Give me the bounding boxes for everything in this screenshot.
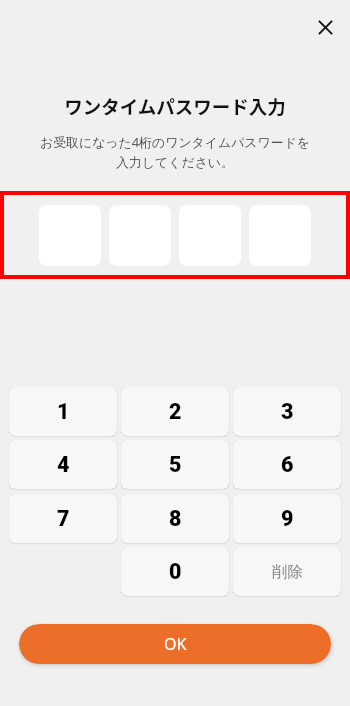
button[interactable]: 4 [9, 440, 117, 489]
button[interactable]: 削除 [233, 547, 341, 596]
button[interactable]: 2 [121, 387, 229, 436]
staticText: お受取になった4桁のワンタイムパスワードを 入力してください。 [18, 133, 332, 171]
staticText: 7 [57, 506, 70, 531]
button[interactable]: 6 [233, 440, 341, 489]
button[interactable]: Close [309, 11, 341, 43]
staticText: 6 [281, 452, 294, 477]
button[interactable]: 7 [9, 494, 117, 543]
button[interactable]: 3 [233, 387, 341, 436]
staticText: 2 [169, 399, 182, 424]
staticText: 8 [169, 506, 182, 531]
button[interactable]: 8 [121, 494, 229, 543]
staticText: 3 [281, 399, 294, 424]
staticText: 5 [169, 452, 182, 477]
staticText: 9 [281, 506, 294, 531]
staticText: 1 [57, 399, 70, 424]
button[interactable]: 0 [121, 547, 229, 596]
staticText: ワンタイムパスワード入力 [0, 93, 350, 120]
button[interactable]: 9 [233, 494, 341, 543]
button[interactable]: 5 [121, 440, 229, 489]
staticText: OK [164, 633, 187, 655]
staticText: 4 [57, 452, 70, 477]
button[interactable]: 1 [9, 387, 117, 436]
staticText: 0 [169, 559, 182, 584]
button[interactable]: OK [19, 624, 331, 664]
staticText: 削除 [272, 562, 303, 582]
